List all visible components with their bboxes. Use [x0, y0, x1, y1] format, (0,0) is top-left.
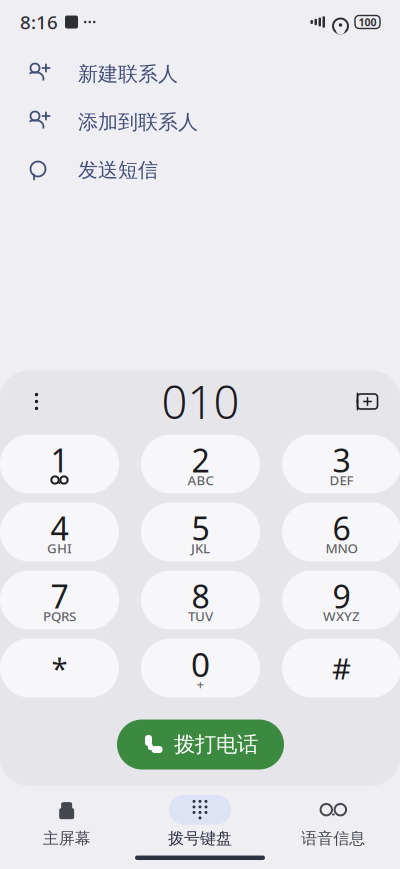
button[interactable]: 主屏幕	[0, 793, 133, 849]
staticText: 发送短信	[78, 158, 158, 182]
staticText: 5	[191, 507, 209, 549]
button[interactable]: 4	[0, 502, 119, 561]
button[interactable]: 删除	[342, 379, 386, 423]
button[interactable]: 1	[0, 434, 119, 493]
staticText: GHI	[47, 539, 72, 557]
staticText: 010	[161, 371, 239, 432]
button[interactable]: 2	[141, 434, 260, 493]
button[interactable]: #	[282, 638, 400, 697]
button[interactable]: *	[0, 638, 119, 697]
staticText: 8:16	[20, 10, 58, 34]
button[interactable]: 语音信息	[267, 793, 400, 849]
staticText: 新建联系人	[78, 62, 178, 86]
staticText: PQRS	[43, 607, 76, 625]
button[interactable]: 9	[282, 570, 400, 629]
staticText: 2	[191, 439, 209, 481]
button[interactable]: 0	[141, 638, 260, 697]
staticText: 9	[332, 575, 350, 617]
button[interactable]: 发送短信	[0, 146, 400, 194]
staticText: +	[196, 675, 204, 693]
staticText: 6	[332, 507, 350, 549]
button[interactable]: 8	[141, 570, 260, 629]
staticText: ABC	[187, 471, 213, 489]
button[interactable]: 6	[282, 502, 400, 561]
staticText: 100	[358, 15, 376, 29]
button[interactable]: 添加到联系人	[0, 98, 400, 146]
staticText: #	[332, 648, 351, 687]
button[interactable]: 拨打电话	[117, 719, 284, 769]
staticText: 3	[332, 439, 350, 481]
button[interactable]: 拨号键盘	[133, 793, 267, 849]
button[interactable]: 5	[141, 502, 260, 561]
staticText: 语音信息	[301, 829, 365, 848]
staticText: 8	[191, 575, 209, 617]
staticText: DEF	[329, 471, 353, 489]
staticText: *	[51, 648, 67, 687]
staticText: JKL	[191, 539, 210, 557]
staticText: 拨打电话	[174, 731, 258, 758]
button[interactable]: 7	[0, 570, 119, 629]
staticText: TUV	[188, 607, 213, 625]
staticText: 1	[50, 439, 68, 481]
button[interactable]: 3	[282, 434, 400, 493]
button[interactable]: 更多选项	[14, 379, 58, 423]
staticText: 0	[191, 642, 210, 686]
staticText: 4	[50, 507, 68, 549]
staticText: 拨号键盘	[168, 829, 232, 848]
staticText: 主屏幕	[43, 829, 91, 848]
staticText: MNO	[325, 539, 357, 557]
staticText: 添加到联系人	[78, 110, 198, 134]
button[interactable]: 新建联系人	[0, 50, 400, 98]
staticText: WXYZ	[323, 607, 360, 625]
staticText: 7	[50, 575, 68, 617]
